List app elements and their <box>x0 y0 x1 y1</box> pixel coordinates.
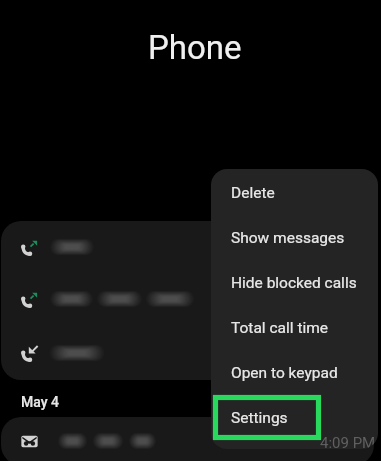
button[interactable]: Show messages <box>211 215 378 260</box>
staticText: Settings <box>231 409 288 427</box>
staticText: Total call time <box>231 319 329 337</box>
button[interactable]: Delete <box>211 170 378 215</box>
button[interactable] <box>1 221 374 272</box>
button[interactable]: Open to keypad <box>211 350 378 395</box>
staticText: 4:09 PM <box>320 434 376 449</box>
staticText: Delete <box>231 184 275 202</box>
staticText: May 4 <box>21 394 59 410</box>
button[interactable]: Hide blocked calls <box>211 260 378 305</box>
button[interactable]: Total call time <box>211 305 378 350</box>
button[interactable]: Settings <box>211 395 378 440</box>
button[interactable] <box>1 326 374 380</box>
button[interactable] <box>1 417 374 461</box>
staticText: Phone <box>148 28 242 67</box>
button[interactable] <box>1 272 374 326</box>
staticText: Show messages <box>231 229 345 247</box>
staticText: Open to keypad <box>231 364 338 382</box>
staticText: Hide blocked calls <box>231 274 357 292</box>
